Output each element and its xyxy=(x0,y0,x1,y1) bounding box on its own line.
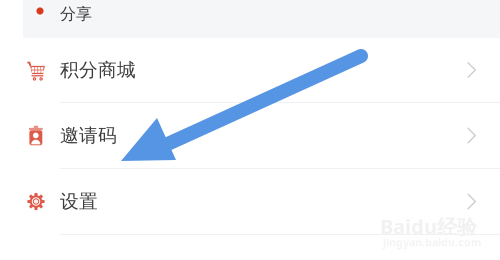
button[interactable]: 积分商城 xyxy=(0,38,500,103)
button[interactable]: 邀请码 xyxy=(0,103,500,169)
staticText: 分享 xyxy=(60,4,92,24)
staticText: 邀请码 xyxy=(60,124,117,147)
button[interactable]: 设置 xyxy=(0,169,500,235)
staticText: Baidu经验 xyxy=(380,213,477,240)
staticText: 积分商城 xyxy=(60,58,136,81)
button[interactable]: 分享 xyxy=(0,0,500,38)
staticText: jingyan.baidu.com xyxy=(383,235,481,249)
staticText: 设置 xyxy=(60,190,98,213)
